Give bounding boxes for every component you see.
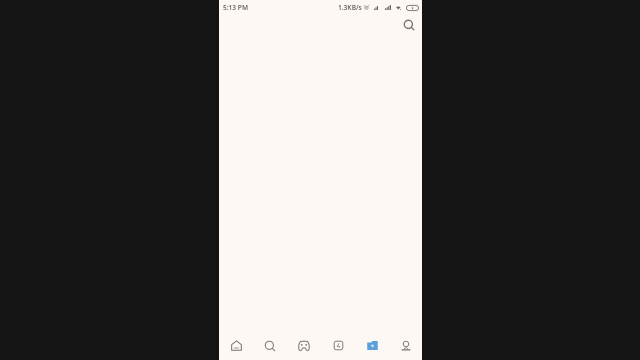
button[interactable]: Search (401, 17, 417, 33)
staticText: 5:13 PM (223, 3, 249, 12)
button[interactable]: Files (355, 333, 389, 358)
button[interactable]: Games (287, 333, 321, 358)
button[interactable]: Home (220, 333, 253, 358)
staticText: 1.3KB/s (338, 3, 362, 12)
button[interactable]: Search (253, 333, 287, 358)
button[interactable]: Apps (321, 333, 355, 358)
button[interactable]: Profile (389, 333, 423, 358)
